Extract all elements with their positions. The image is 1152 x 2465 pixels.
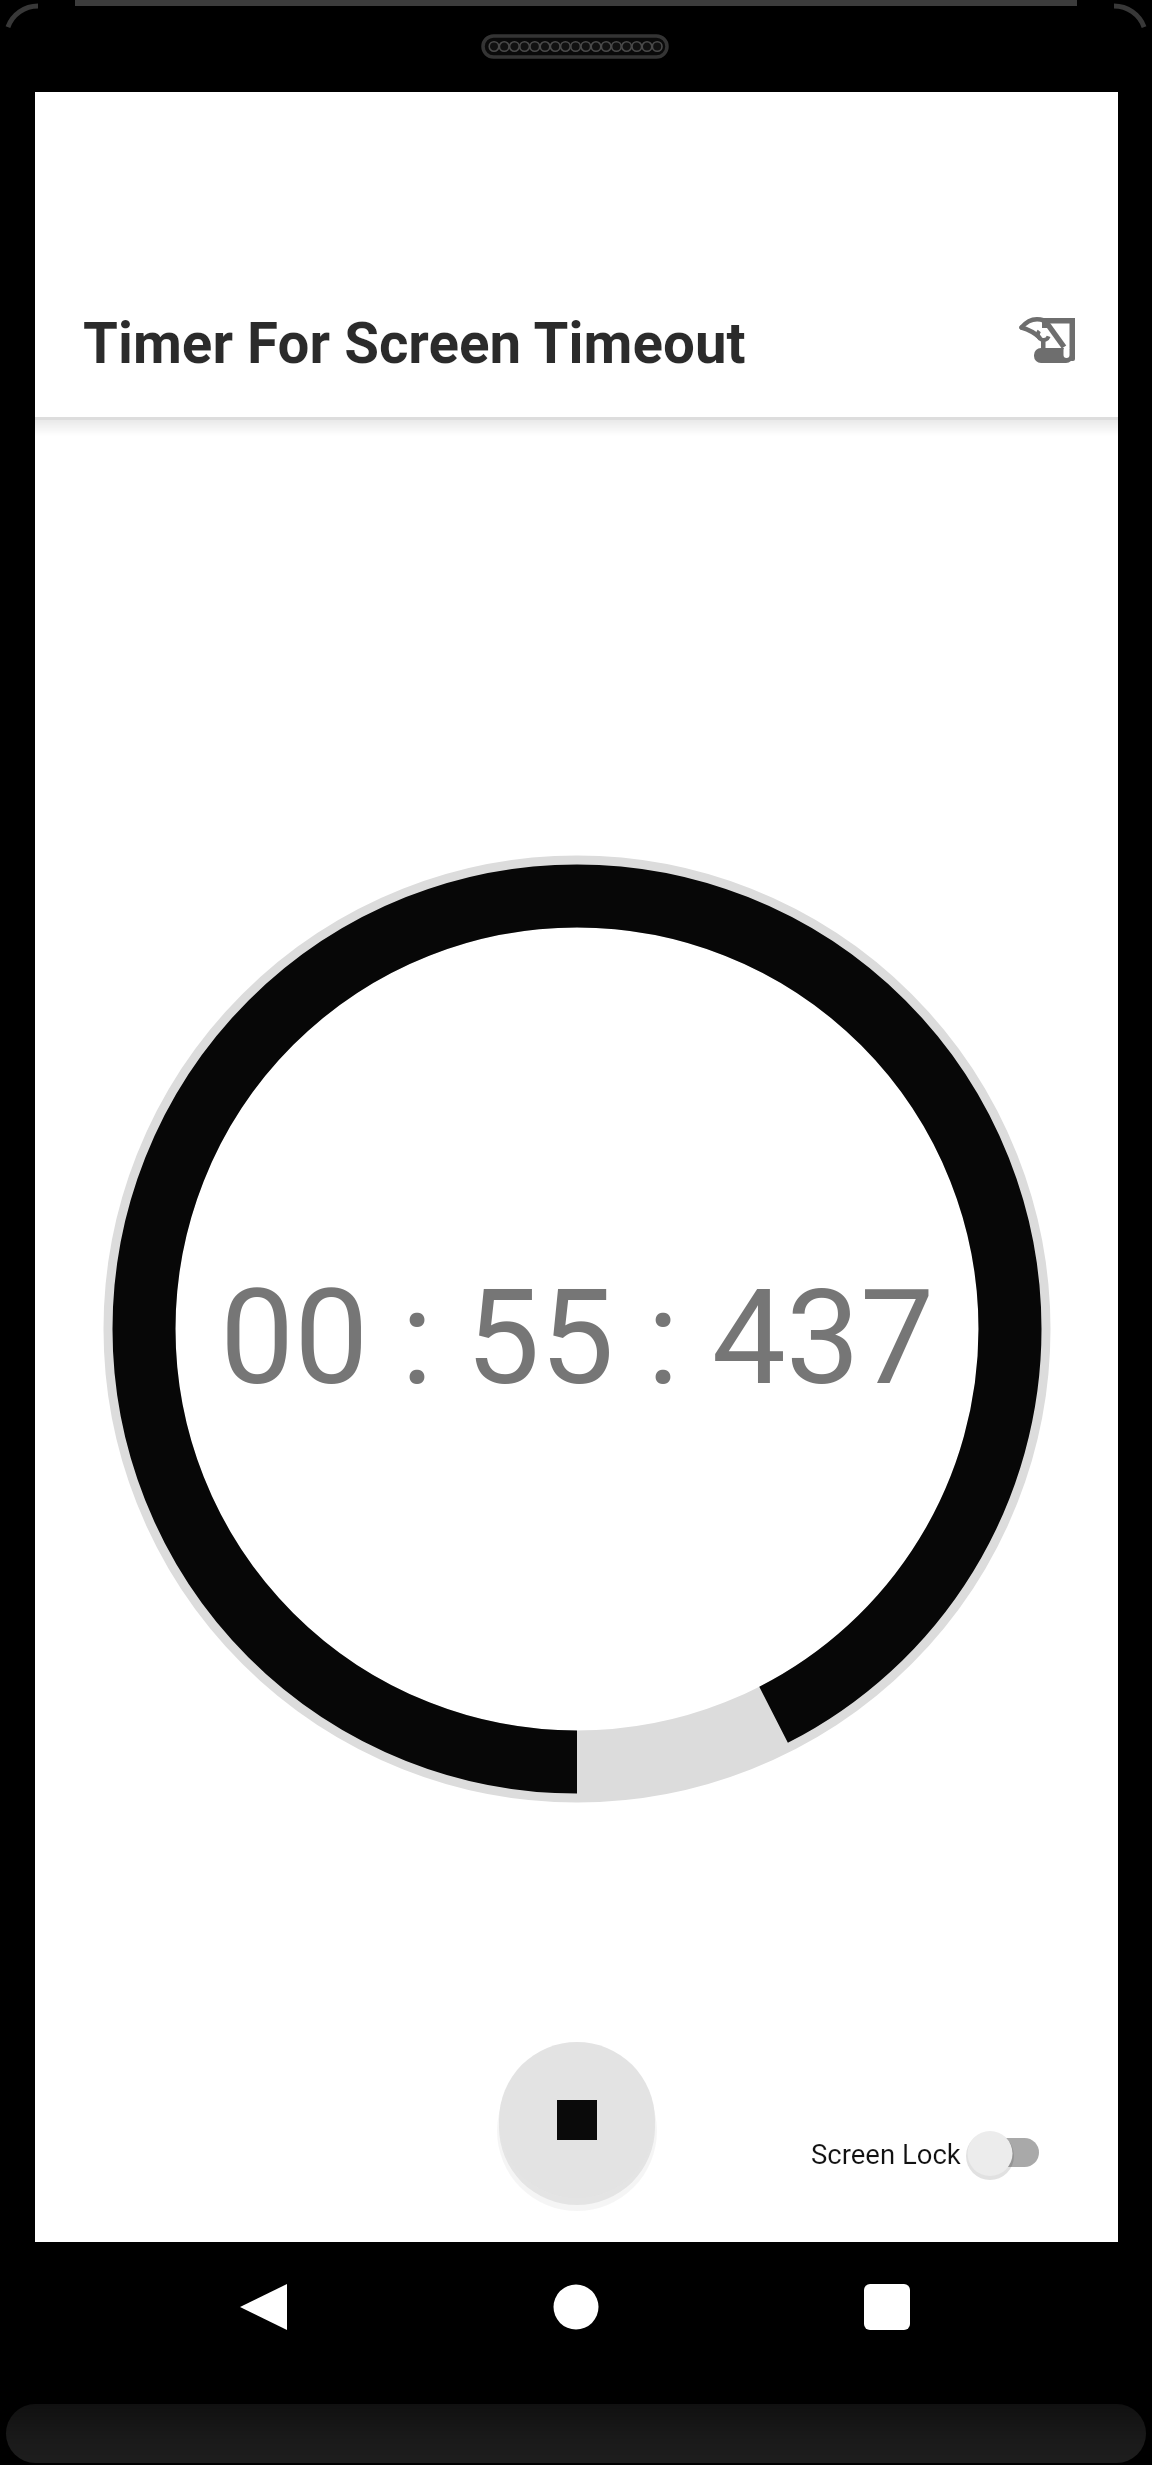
button[interactable]: [1005, 302, 1095, 382]
staticText: Timer For Screen Timeout: [83, 311, 746, 377]
button[interactable]: [212, 2263, 316, 2353]
staticText: Screen Lock: [811, 2138, 961, 2170]
button[interactable]: [524, 2263, 628, 2353]
button[interactable]: Screen Lock: [735, 2116, 1065, 2192]
staticText: 00 : 55 : 437: [220, 1261, 935, 1416]
button[interactable]: [499, 2042, 655, 2198]
button[interactable]: [834, 2263, 938, 2353]
